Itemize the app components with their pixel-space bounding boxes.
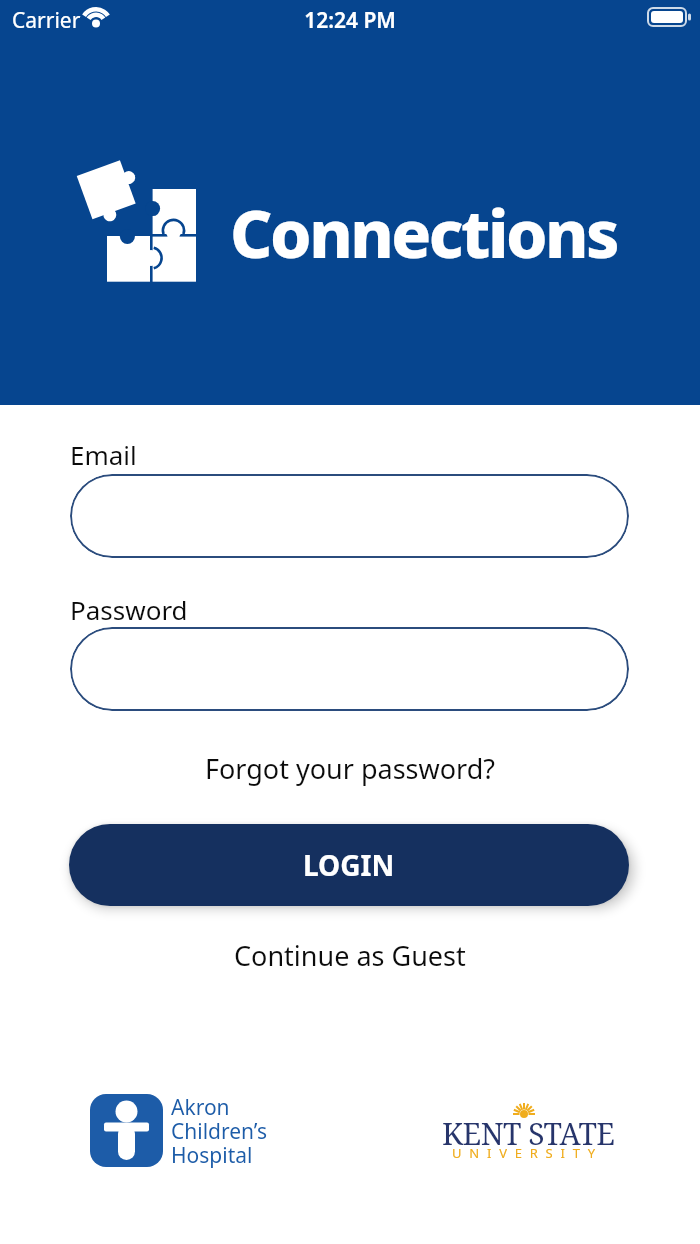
button[interactable]: Forgot your password? (205, 750, 496, 787)
staticText: Hospital (171, 1141, 253, 1170)
staticText: Children’s (171, 1117, 267, 1146)
staticText: 12:24 PM (0, 6, 700, 35)
staticText: Email (70, 437, 137, 472)
staticText: Connections (230, 187, 618, 277)
button[interactable]: LOGIN (69, 824, 629, 906)
staticText: LOGIN (303, 846, 395, 884)
staticText: KENT STATE (442, 1113, 615, 1154)
button[interactable]: Continue as Guest (234, 937, 466, 974)
staticText: Akron (171, 1093, 230, 1122)
staticText: U N I V E R S I T Y (452, 1144, 598, 1162)
button[interactable] (70, 627, 629, 711)
button[interactable] (70, 474, 629, 558)
staticText: Carrier (12, 6, 81, 35)
staticText: Password (70, 592, 188, 627)
